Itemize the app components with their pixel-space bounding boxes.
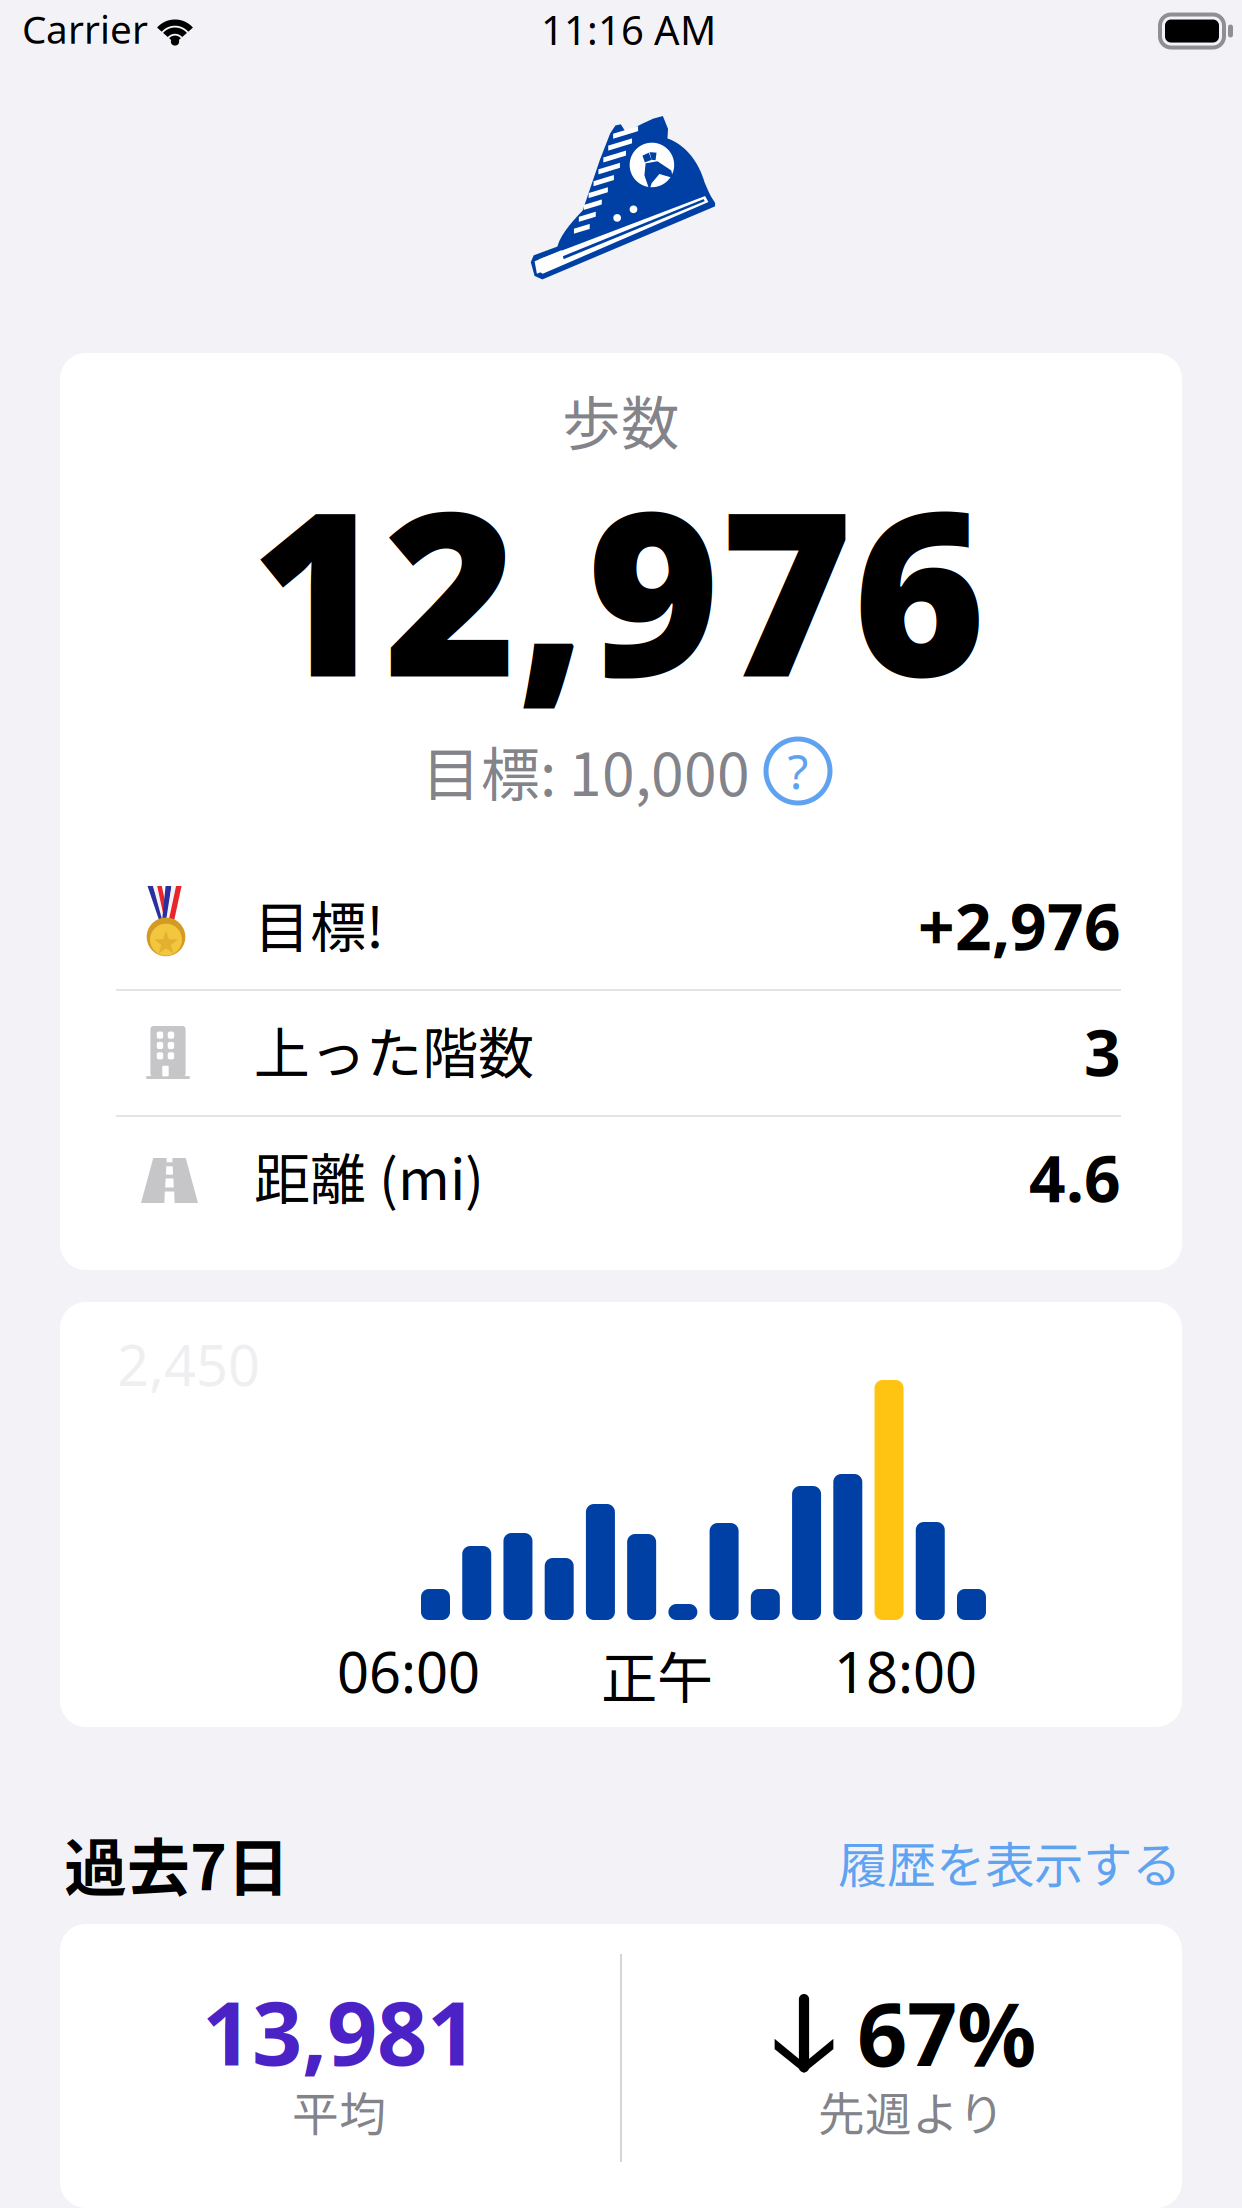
staticText: 12,976	[251, 438, 986, 739]
staticText: 距離 (mi)	[254, 1135, 484, 1216]
staticText: 過去7日	[64, 1818, 290, 1909]
staticText: 歩数	[562, 377, 680, 462]
staticText: 18:00	[834, 1634, 977, 1708]
staticText: 上った階数	[254, 1009, 534, 1090]
staticText: +2,976	[918, 883, 1121, 968]
button[interactable]: 履歴を表示する	[838, 1826, 1181, 1897]
staticText: 目標!	[254, 883, 384, 964]
staticText: 13,981	[202, 1973, 477, 2090]
button[interactable]: 歩数目標について	[766, 739, 830, 803]
staticText: 履歴を表示する	[838, 1826, 1181, 1897]
staticText: 06:00	[337, 1634, 480, 1708]
staticText: 11:16 AM	[541, 3, 716, 56]
staticText: ?	[787, 739, 808, 803]
staticText: 3	[1084, 1009, 1121, 1094]
staticText: 目標: 10,000	[422, 728, 750, 813]
staticText: 67%	[857, 1974, 1036, 2091]
staticText: 先週より	[818, 2077, 1005, 2145]
staticText: 4.6	[1029, 1135, 1121, 1220]
staticText: 平均	[292, 2077, 386, 2145]
staticText: Carrier	[22, 3, 148, 54]
staticText: 正午	[601, 1634, 713, 1715]
staticText: 2,450	[117, 1327, 260, 1401]
